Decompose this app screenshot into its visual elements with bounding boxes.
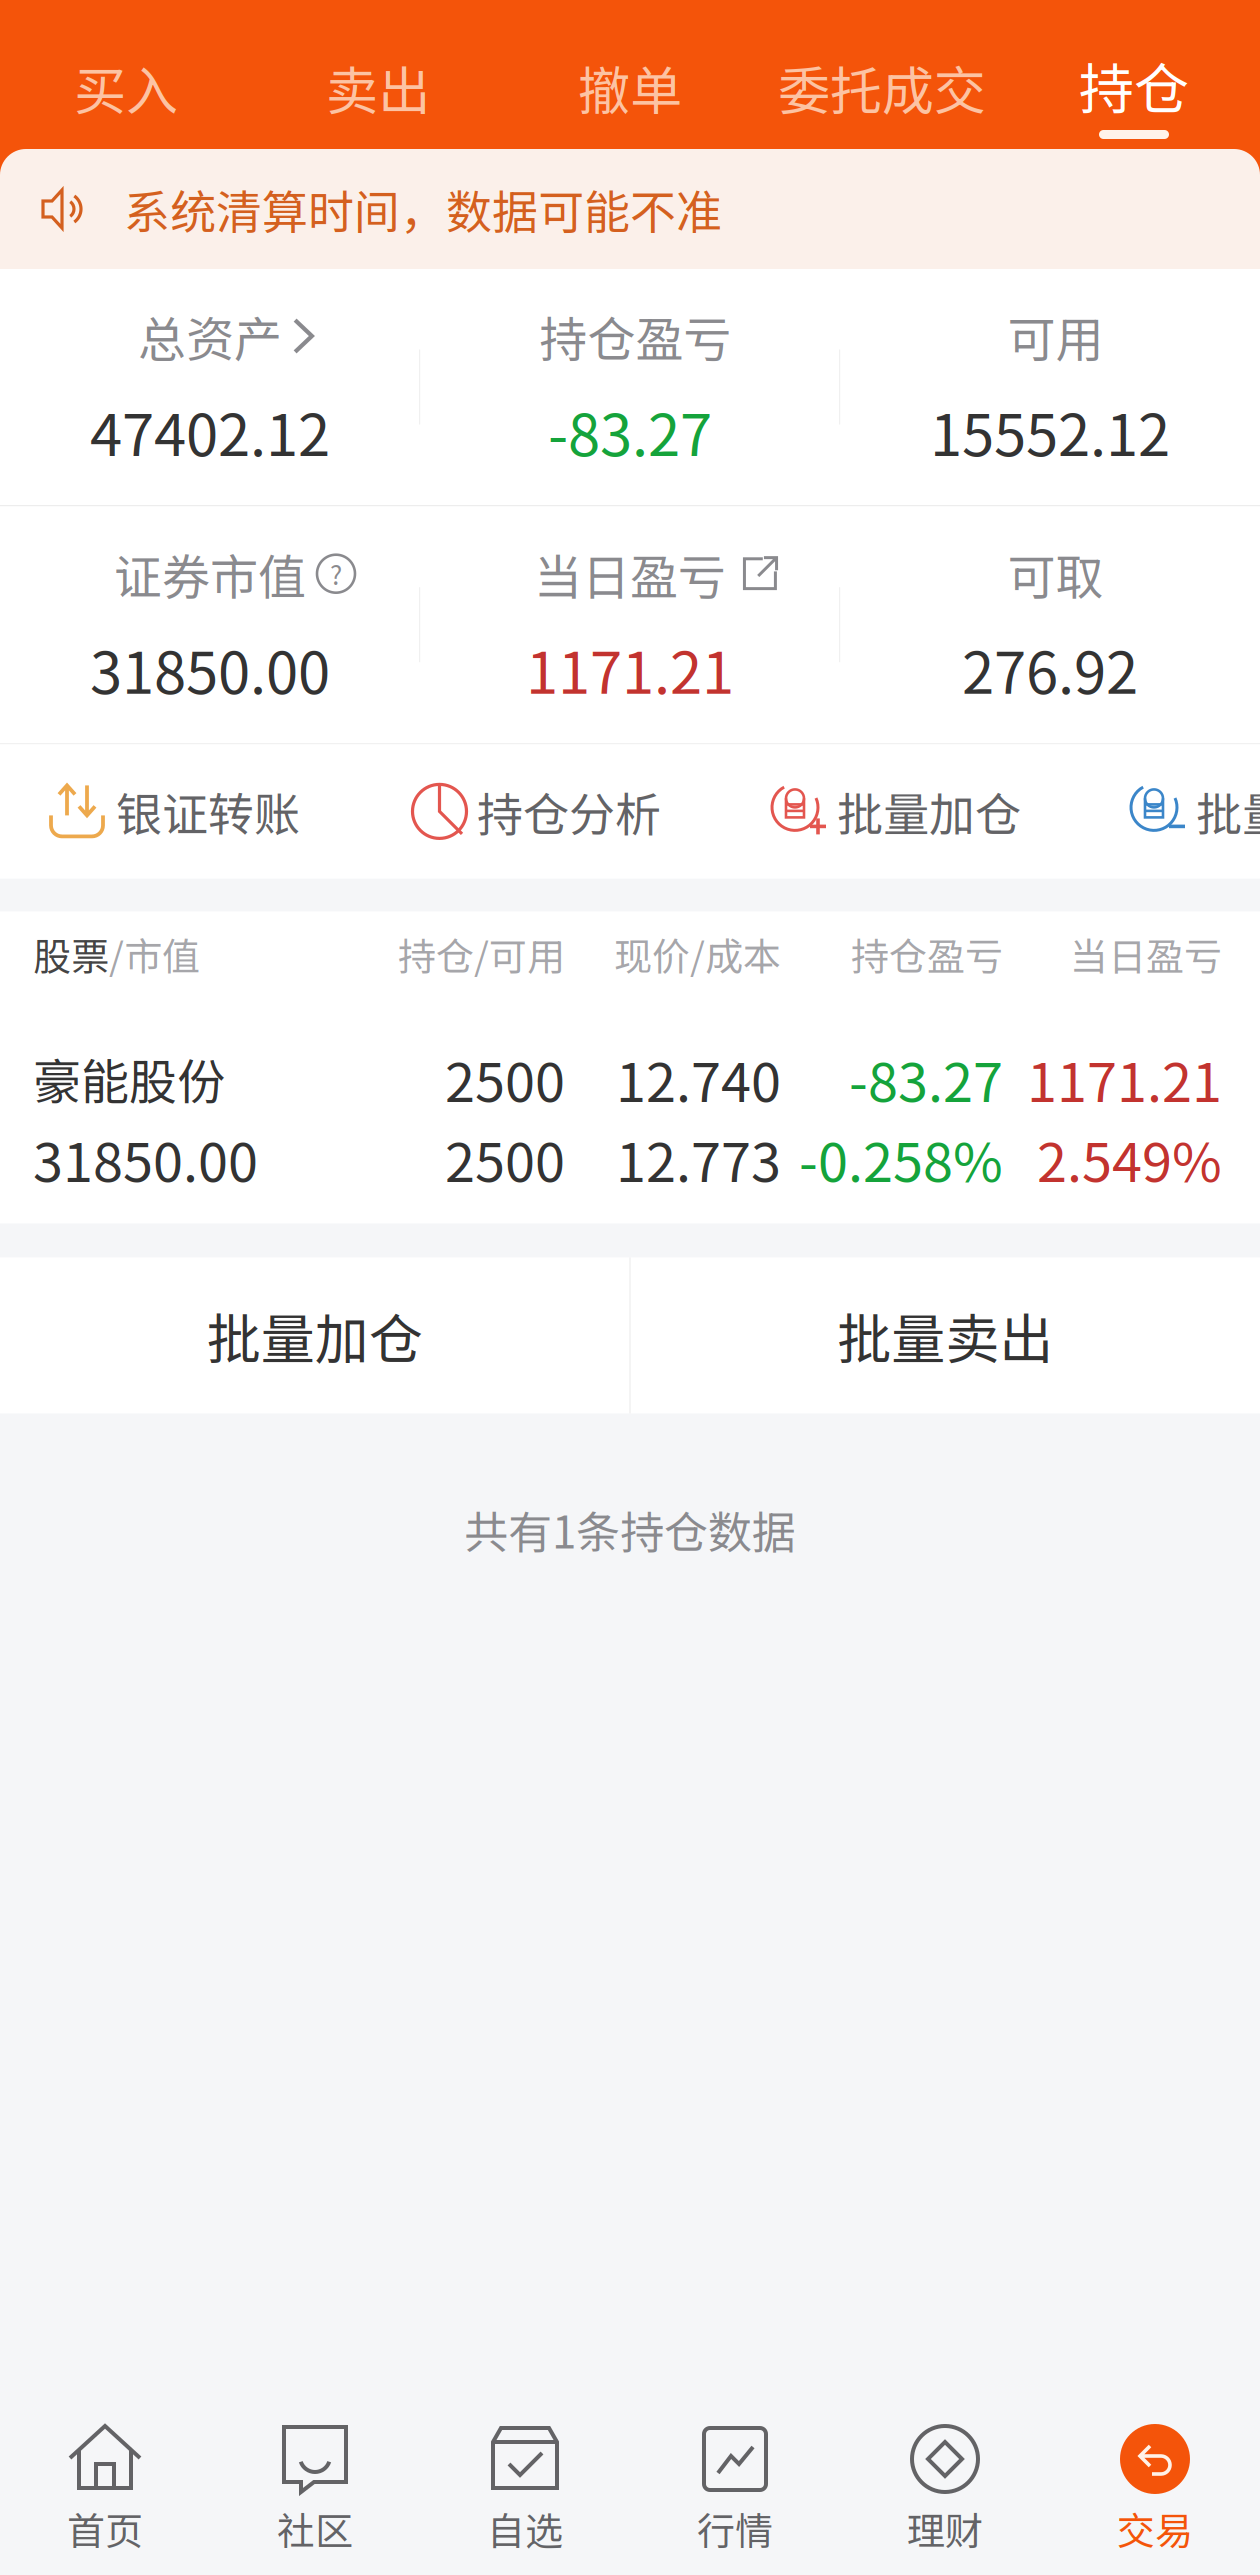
staticText: 卖出 bbox=[326, 50, 430, 125]
staticText: 可用 bbox=[1007, 301, 1103, 371]
staticText: 31850.00 bbox=[90, 626, 330, 710]
staticText: 现价/成本 bbox=[614, 926, 781, 981]
staticText: 银证转账 bbox=[116, 778, 300, 845]
staticText: 首页 bbox=[67, 2501, 143, 2556]
staticText: 当日盈亏 bbox=[1070, 926, 1222, 981]
staticText: 2500 bbox=[445, 1119, 565, 1197]
staticText: 系统清算时间，数据可能不准 bbox=[124, 176, 722, 242]
staticText: 社区 bbox=[277, 2501, 353, 2556]
staticText: 共有1条持仓数据 bbox=[464, 1497, 796, 1561]
staticText: 31850.00 bbox=[33, 1119, 258, 1197]
staticText: 2500 bbox=[445, 1039, 565, 1117]
staticText: 买入 bbox=[74, 50, 178, 125]
staticText: 持仓 bbox=[1079, 45, 1189, 125]
staticText: 持仓盈亏 bbox=[539, 301, 731, 371]
staticText: 豪能股份 bbox=[33, 1044, 225, 1113]
staticText: -83.27 bbox=[548, 389, 712, 473]
button[interactable]: 批量 bbox=[1129, 778, 1260, 845]
staticText: 1171.21 bbox=[1027, 1039, 1222, 1117]
button[interactable]: 豪能股份 bbox=[0, 1038, 1260, 1198]
button[interactable]: 自选 bbox=[420, 2395, 630, 2575]
staticText: 12.773 bbox=[616, 1119, 781, 1197]
staticText: 276.92 bbox=[962, 626, 1138, 710]
staticText: -0.258% bbox=[799, 1119, 1003, 1197]
button[interactable]: 委托成交 bbox=[756, 0, 1008, 149]
staticText: 可取 bbox=[1007, 539, 1103, 608]
staticText: 持仓盈亏 bbox=[851, 926, 1003, 981]
staticText: 总资产 bbox=[138, 301, 282, 371]
staticText: 12.740 bbox=[616, 1039, 781, 1117]
staticText: 当日盈亏 bbox=[534, 539, 726, 608]
button[interactable]: 银证转账 bbox=[49, 778, 300, 845]
button[interactable]: 首页 bbox=[0, 2395, 210, 2575]
button[interactable]: 交易 bbox=[1050, 2395, 1260, 2575]
staticText: 委托成交 bbox=[778, 50, 986, 125]
staticText: 证券市值 bbox=[114, 539, 306, 608]
staticText: 交易 bbox=[1117, 2501, 1193, 2556]
staticText: 47402.12 bbox=[90, 389, 330, 473]
staticText: 理财 bbox=[907, 2501, 983, 2556]
staticText: 股票 bbox=[33, 926, 109, 981]
button[interactable]: 理财 bbox=[840, 2395, 1050, 2575]
staticText: 行情 bbox=[697, 2501, 773, 2556]
staticText: -83.27 bbox=[849, 1039, 1003, 1117]
staticText: 2.549% bbox=[1037, 1119, 1222, 1197]
button[interactable]: 行情 bbox=[630, 2395, 840, 2575]
button[interactable]: 批量加仓 bbox=[0, 1257, 629, 1413]
staticText: 撤单 bbox=[578, 50, 682, 125]
staticText: 自选 bbox=[487, 2501, 563, 2556]
button[interactable]: 社区 bbox=[210, 2395, 420, 2575]
staticText: 批量 bbox=[1196, 778, 1260, 845]
staticText: ? bbox=[330, 555, 342, 592]
button[interactable]: 批量加仓 bbox=[770, 778, 1021, 845]
staticText: 批量加仓 bbox=[207, 1296, 423, 1374]
button[interactable]: 撤单 bbox=[504, 0, 756, 149]
button[interactable]: 卖出 bbox=[252, 0, 504, 149]
staticText: /市值 bbox=[109, 926, 200, 981]
staticText: 批量加仓 bbox=[837, 778, 1021, 845]
staticText: 批量卖出 bbox=[837, 1296, 1053, 1374]
staticText: 15552.12 bbox=[930, 389, 1170, 473]
staticText: 持仓分析 bbox=[477, 778, 661, 845]
button[interactable]: 持仓 bbox=[1008, 0, 1260, 149]
button[interactable]: 持仓分析 bbox=[411, 778, 661, 845]
staticText: 持仓/可用 bbox=[398, 926, 565, 981]
button[interactable]: 批量卖出 bbox=[631, 1257, 1260, 1413]
staticText: 1171.21 bbox=[526, 626, 734, 710]
button[interactable]: 买入 bbox=[0, 0, 252, 149]
